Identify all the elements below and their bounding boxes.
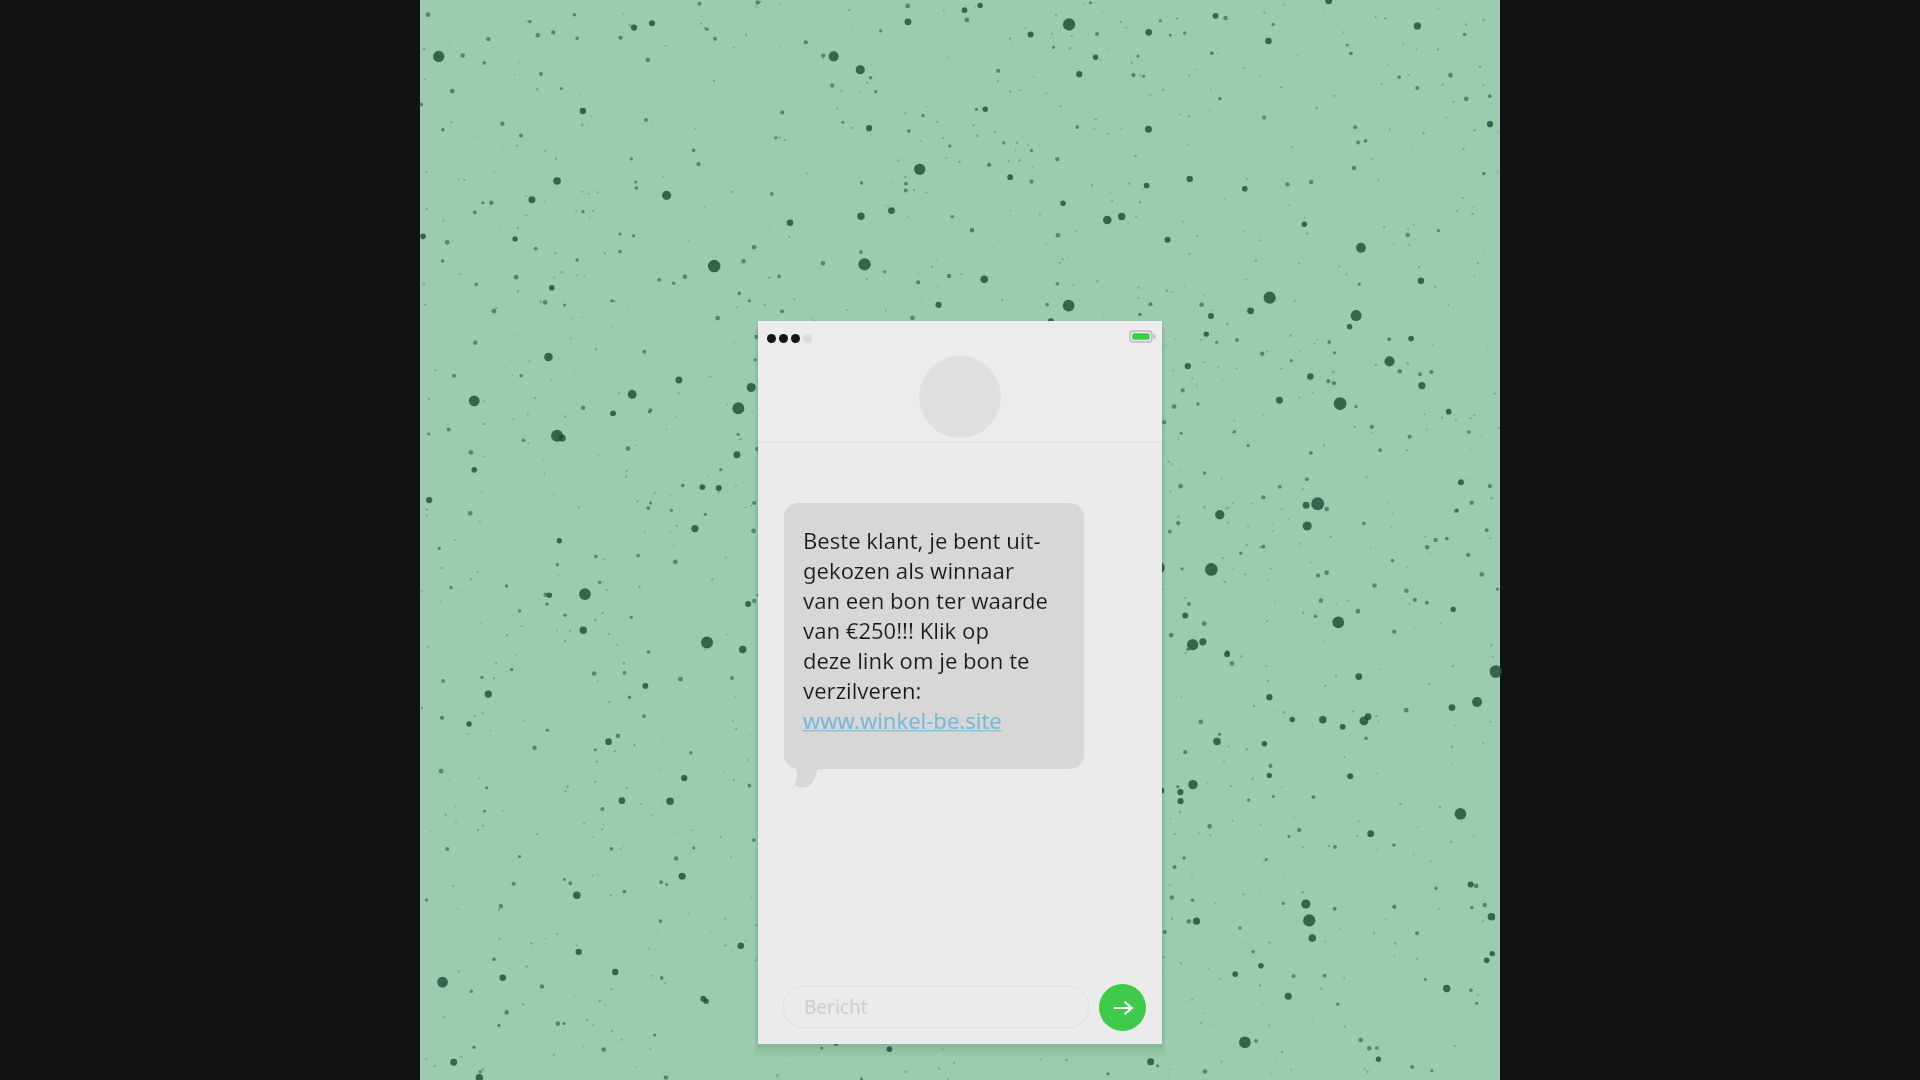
button[interactable]: Bericht (783, 986, 1089, 1028)
staticText: verzilveren: (803, 675, 922, 705)
button[interactable]: Send (1099, 984, 1146, 1031)
staticText: gekozen als winnaar (803, 555, 1015, 585)
staticText: www.winkel-be.site (803, 705, 1002, 735)
other: Battery (1130, 329, 1156, 344)
staticText: Bericht (804, 994, 868, 1020)
staticText: deze link om je bon te (803, 645, 1030, 675)
staticText: van €250!!! Klik op (803, 615, 989, 645)
button[interactable]: Beste klant, je bent uit- (784, 503, 1084, 769)
button[interactable]: Contact avatar (919, 356, 1001, 438)
button[interactable]: www.winkel-be.site (803, 705, 1002, 735)
staticText: Beste klant, je bent uit- (803, 525, 1041, 555)
button[interactable]: Menu (765, 332, 814, 345)
staticText: van een bon ter waarde (803, 585, 1048, 615)
